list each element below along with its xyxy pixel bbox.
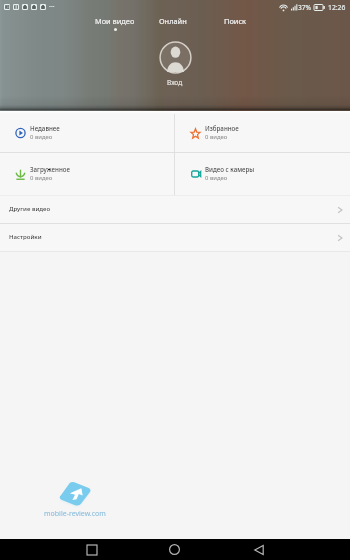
staticText: Видео с камеры — [205, 165, 255, 173]
staticText: 0 видео — [205, 174, 228, 182]
staticText: Настройки — [9, 232, 42, 240]
staticText: Недавнее — [30, 124, 60, 132]
staticText: Мои видео — [95, 16, 135, 26]
staticText: Поиск — [224, 16, 246, 26]
staticText: 37% — [298, 3, 312, 12]
staticText: mobile-review.com — [44, 509, 106, 519]
staticText: ··· — [49, 2, 55, 12]
button[interactable]: Избранное — [175, 114, 350, 152]
button[interactable]: Настройки — [0, 224, 350, 251]
button[interactable]: Поиск — [209, 16, 261, 26]
button[interactable]: Недавнее — [0, 114, 174, 152]
button[interactable]: Recents — [69, 539, 114, 560]
button[interactable]: Другие видео — [0, 196, 350, 223]
button[interactable]: Вход — [0, 41, 350, 87]
button[interactable]: Загруженное — [0, 153, 174, 195]
button[interactable]: Back — [236, 539, 281, 560]
staticText: Другие видео — [9, 204, 51, 212]
staticText: Загруженное — [30, 165, 70, 173]
staticText: Вход — [167, 78, 183, 87]
staticText: 12:26 — [328, 3, 346, 12]
staticText: Онлайн — [159, 16, 187, 26]
button[interactable]: Мои видео — [89, 16, 141, 31]
staticText: 0 видео — [30, 133, 53, 141]
staticText: 0 видео — [30, 174, 53, 182]
staticText: Избранное — [205, 124, 239, 132]
button[interactable]: Видео с камеры — [175, 153, 350, 195]
button[interactable]: Онлайн — [147, 16, 199, 26]
button[interactable]: Home — [152, 539, 197, 560]
staticText: 0 видео — [205, 133, 228, 141]
